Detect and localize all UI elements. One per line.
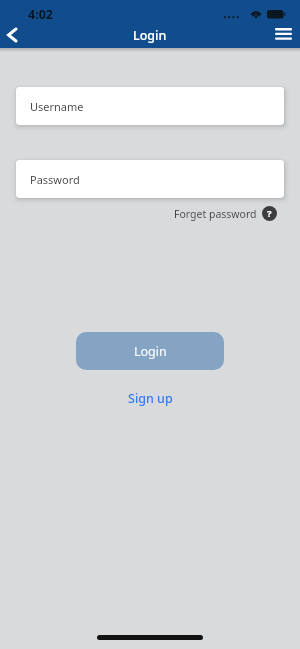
button[interactable]: Sign up xyxy=(128,390,173,407)
button[interactable]: Password xyxy=(16,160,284,198)
staticText: Login xyxy=(133,27,167,44)
staticText: ? xyxy=(267,207,272,220)
staticText: Login xyxy=(134,343,167,360)
staticText: Sign up xyxy=(128,390,173,407)
staticText: Password xyxy=(30,172,80,187)
button[interactable]: Login xyxy=(76,332,224,370)
button[interactable] xyxy=(270,22,296,46)
button[interactable] xyxy=(0,24,24,46)
staticText: 4:02 xyxy=(28,6,53,23)
staticText: Forget password xyxy=(174,207,257,221)
button[interactable]: Username xyxy=(16,87,284,125)
staticText: Username xyxy=(30,99,84,114)
button[interactable]: Forget password xyxy=(174,206,277,221)
